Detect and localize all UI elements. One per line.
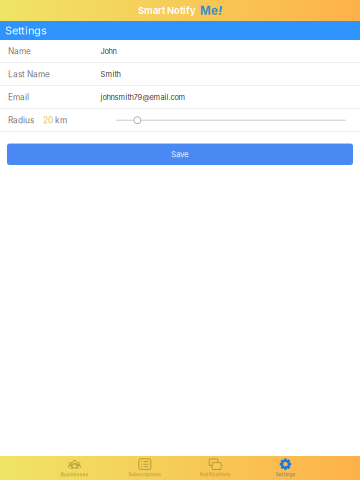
- staticText: Save: [171, 149, 189, 159]
- button[interactable]: Save: [7, 143, 353, 165]
- staticText: Subscriptions: [128, 471, 161, 477]
- staticText: Name: [8, 46, 31, 56]
- staticText: Businesses: [61, 471, 89, 477]
- staticText: Smart Notify: [138, 5, 196, 16]
- staticText: johnsmith79@email.com: [100, 93, 185, 102]
- button[interactable]: Businesses: [39, 456, 110, 480]
- staticText: Last Name: [8, 69, 50, 79]
- staticText: Email: [8, 92, 29, 102]
- staticText: Settings: [275, 471, 295, 477]
- staticText: Me: [200, 4, 218, 17]
- staticText: !: [218, 3, 222, 18]
- button[interactable]: Subscriptions: [110, 456, 180, 480]
- staticText: Smith: [100, 70, 120, 79]
- button[interactable]: Settings: [250, 456, 321, 480]
- button[interactable]: Notifications: [180, 456, 250, 480]
- staticText: Settings: [5, 24, 47, 37]
- staticText: km: [55, 115, 67, 125]
- staticText: Notifications: [200, 471, 231, 477]
- staticText: John: [100, 47, 116, 56]
- staticText: Radius: [8, 115, 34, 125]
- staticText: 20: [43, 115, 53, 125]
